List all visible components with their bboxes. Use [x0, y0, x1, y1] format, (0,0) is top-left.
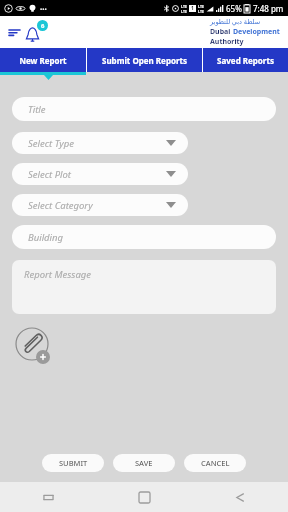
button[interactable]: Select Plot: [12, 163, 188, 185]
staticText: LTE: [198, 9, 204, 14]
staticText: CANCEL: [201, 458, 230, 468]
staticText: Select Type: [28, 137, 74, 150]
staticText: SUBMIT: [59, 458, 88, 468]
staticText: 7:48 pm: [253, 3, 284, 14]
button[interactable]: New Report: [0, 48, 86, 72]
staticText: LTE: [181, 4, 187, 9]
staticText: Dubai: [210, 27, 233, 37]
staticText: Select Category: [28, 199, 93, 212]
staticText: Saved Reports: [217, 55, 274, 66]
staticText: Authority: [210, 37, 244, 47]
button[interactable]: Recents: [0, 482, 96, 512]
button[interactable]: Report Message: [12, 260, 276, 314]
button[interactable]: Notifications: [24, 20, 48, 44]
staticText: Title: [28, 103, 46, 116]
staticText: Report Message: [24, 268, 92, 281]
button[interactable]: Submit Open Reports: [87, 48, 202, 72]
staticText: Development: [233, 27, 280, 37]
staticText: ···: [40, 3, 47, 14]
button[interactable]: SAVE: [113, 454, 175, 472]
button[interactable]: Home: [96, 482, 192, 512]
staticText: Building: [28, 231, 64, 244]
button[interactable]: SUBMIT: [42, 454, 104, 472]
button[interactable]: Select Type: [12, 132, 188, 154]
staticText: 6: [41, 22, 45, 30]
staticText: LTE: [181, 9, 187, 14]
button[interactable]: Menu: [7, 22, 22, 42]
button[interactable]: Saved Reports: [203, 48, 288, 72]
staticText: SAVE: [135, 458, 153, 468]
button[interactable]: Back: [192, 482, 288, 512]
staticText: 1: [191, 5, 194, 12]
button[interactable]: Select Category: [12, 194, 188, 216]
staticText: سلطة دبي للتطوير: [210, 17, 261, 26]
button[interactable]: CANCEL: [184, 454, 246, 472]
staticText: New Report: [19, 55, 67, 66]
staticText: Submit Open Reports: [102, 55, 187, 66]
button[interactable]: Building: [12, 225, 276, 249]
button[interactable]: Add attachment: [15, 327, 55, 367]
staticText: 65%: [226, 3, 242, 14]
button[interactable]: Title: [12, 97, 276, 121]
staticText: Select Plot: [28, 168, 71, 181]
staticText: LTE: [198, 4, 204, 9]
